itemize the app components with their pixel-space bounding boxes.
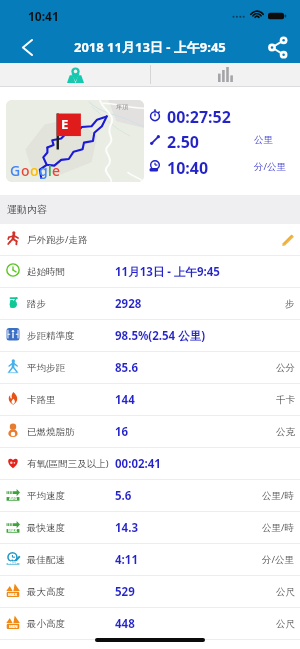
staticText: 85.6 <box>115 360 138 376</box>
staticText: 步距精準度 <box>27 330 75 342</box>
staticText: MAX <box>8 528 18 533</box>
staticText: 千卡 <box>276 394 295 406</box>
staticText: 448 <box>115 616 135 632</box>
button[interactable]: 卡路里 <box>0 384 300 415</box>
staticText: e <box>52 161 61 180</box>
button[interactable]: 已燃燒脂肪 <box>0 416 300 447</box>
staticText: 公里 <box>254 134 273 146</box>
staticText: 起始時間 <box>27 266 65 278</box>
staticText: E <box>61 115 69 133</box>
staticText: 2018 11月13日 - 上午9:45 <box>74 38 226 56</box>
staticText: 最大高度 <box>27 586 65 598</box>
staticText: 00:02:41 <box>115 456 161 472</box>
staticText: 98.5%(2.54 公里) <box>115 328 206 344</box>
staticText: AVG <box>9 496 18 501</box>
staticText: 平均速度 <box>27 490 65 502</box>
staticText: 最小高度 <box>27 618 65 630</box>
button[interactable]: 起始時間 <box>0 256 300 287</box>
staticText: 10:41 <box>28 8 59 24</box>
button[interactable]: 踏步 <box>0 288 300 319</box>
button[interactable]: MIN <box>0 608 300 639</box>
staticText: 11月13日 - 上午9:45 <box>115 264 220 280</box>
button[interactable]: Back <box>10 32 43 62</box>
button[interactable]: 戶外跑步/走路 <box>0 224 300 255</box>
staticText: 已燃燒脂肪 <box>27 426 75 438</box>
staticText: 公克 <box>276 426 295 438</box>
button[interactable]: Share <box>261 32 294 62</box>
staticText: o <box>30 161 39 180</box>
button[interactable]: 有氧(區間三及以上) <box>0 448 300 479</box>
staticText: g <box>39 161 48 180</box>
button[interactable]: BEST <box>0 544 300 575</box>
staticText: l <box>48 161 52 180</box>
staticText: 公尺 <box>276 618 295 630</box>
staticText: 2928 <box>115 296 142 312</box>
staticText: 4:11 <box>115 552 138 568</box>
staticText: 529 <box>115 584 135 600</box>
button[interactable]: Map tab <box>0 63 150 86</box>
staticText: 最佳配速 <box>27 554 65 566</box>
staticText: 公尺 <box>276 586 295 598</box>
staticText: 公分 <box>276 362 295 374</box>
staticText: 5.6 <box>115 488 132 504</box>
staticText: MAX <box>8 592 18 597</box>
staticText: 卡路里 <box>27 394 56 406</box>
button[interactable]: MAX <box>0 576 300 607</box>
staticText: 公里/時 <box>262 521 295 534</box>
staticText: 最快速度 <box>27 522 65 534</box>
staticText: 坪頂 <box>116 103 128 111</box>
staticText: 2.50 <box>167 131 199 149</box>
button[interactable]: 平均步距 <box>0 352 300 383</box>
staticText: 00:27:52 <box>167 106 231 124</box>
button[interactable]: 步距精準度 <box>0 320 300 351</box>
button[interactable]: Route map <box>6 100 144 182</box>
staticText: 戶外跑步/走路 <box>27 233 88 246</box>
staticText: 10:40 <box>167 157 209 175</box>
staticText: 公里/時 <box>262 489 295 502</box>
staticText: 運動內容 <box>7 203 47 216</box>
staticText: BEST <box>8 560 18 565</box>
staticText: MIN <box>9 624 18 629</box>
button[interactable]: Chart tab <box>150 63 300 86</box>
staticText: o <box>21 161 30 180</box>
staticText: 分/公里 <box>254 160 287 173</box>
button[interactable]: MAX <box>0 512 300 543</box>
staticText: 分/公里 <box>262 553 295 566</box>
staticText: 步 <box>285 298 295 310</box>
staticText: 平均步距 <box>27 362 65 374</box>
staticText: 144 <box>115 392 135 408</box>
button[interactable]: AVG <box>0 480 300 511</box>
staticText: 16 <box>115 424 129 440</box>
staticText: 14.3 <box>115 520 138 536</box>
staticText: 踏步 <box>27 298 46 310</box>
staticText: 有氧(區間三及以上) <box>27 457 109 470</box>
staticText: G <box>10 161 21 180</box>
